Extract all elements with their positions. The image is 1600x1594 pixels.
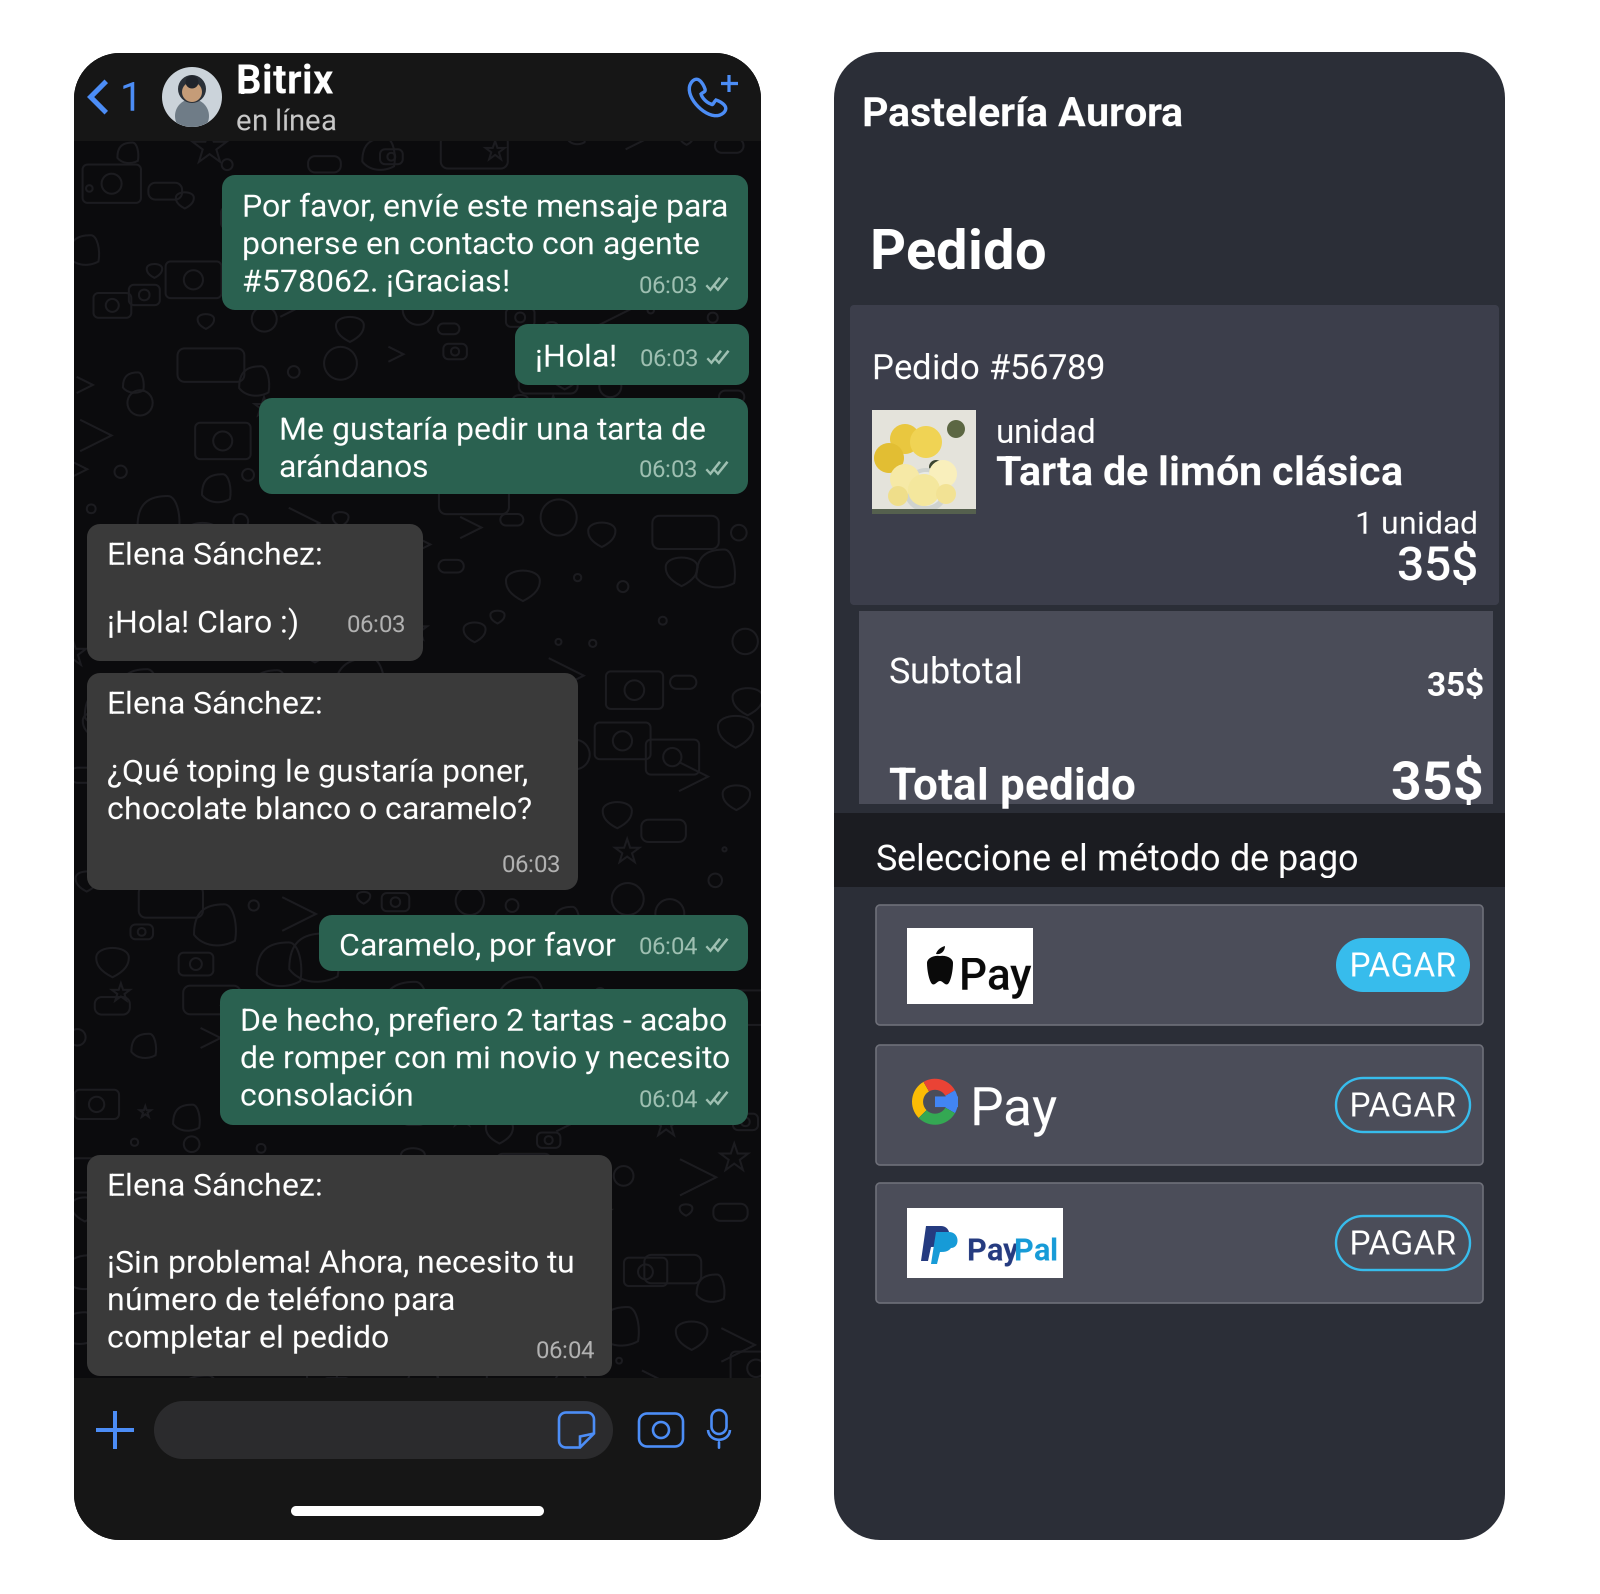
button[interactable]: Attach xyxy=(74,1411,154,1449)
staticText: 35$ xyxy=(1397,536,1478,592)
staticText: Pay xyxy=(959,949,1032,1001)
staticText: PAGAR xyxy=(1349,1223,1456,1263)
staticText: PAGAR xyxy=(1349,945,1456,985)
staticText: PAGAR xyxy=(1349,1085,1456,1125)
staticText: 06:03 xyxy=(502,850,560,878)
staticText: Subtotal xyxy=(889,650,1023,692)
button[interactable]: Message xyxy=(154,1401,613,1459)
staticText: ¡Hola! Claro :) xyxy=(107,603,299,640)
staticText: 06:04 xyxy=(536,1336,594,1364)
button[interactable]: PAGAR xyxy=(1336,1216,1470,1270)
button[interactable]: Pay xyxy=(876,905,1483,1025)
staticText: 35$ xyxy=(1391,750,1484,812)
button[interactable]: Back xyxy=(74,74,148,120)
staticText: Pay xyxy=(967,1232,1018,1268)
staticText: Por favor, envíe este mensaje para poner… xyxy=(242,187,728,299)
staticText: 06:03 xyxy=(347,610,405,638)
staticText: Seleccione el método de pago xyxy=(876,837,1359,879)
staticText: Tarta de limón clásica xyxy=(996,447,1403,495)
staticText: 06:04 xyxy=(639,932,697,960)
staticText: 35$ xyxy=(1427,665,1484,704)
staticText: Elena Sánchez: xyxy=(107,684,323,721)
staticText: 1 unidad xyxy=(1355,504,1478,541)
button[interactable]: New call xyxy=(685,73,761,121)
button[interactable]: Voice message xyxy=(707,1410,761,1450)
button[interactable]: Pay xyxy=(876,1183,1483,1303)
button[interactable]: Camera xyxy=(613,1413,707,1446)
staticText: Pedido #56789 xyxy=(872,347,1105,388)
staticText: 06:03 xyxy=(639,271,697,299)
button[interactable]: Pay xyxy=(876,1045,1483,1165)
staticText: 06:04 xyxy=(639,1085,697,1113)
staticText: Pal xyxy=(1014,1232,1058,1268)
staticText: Pastelería Aurora xyxy=(862,88,1183,136)
button[interactable]: PAGAR xyxy=(1336,938,1470,992)
staticText: Pay xyxy=(970,1076,1057,1138)
staticText: 1 xyxy=(120,74,142,120)
staticText: Bitrix xyxy=(236,56,333,103)
staticText: Total pedido xyxy=(889,759,1136,811)
staticText: 06:03 xyxy=(639,455,697,483)
staticText: Pedido xyxy=(870,217,1047,283)
staticText: unidad xyxy=(996,412,1096,451)
staticText: ¿Qué toping le gustaría poner, chocolate… xyxy=(107,752,532,827)
staticText: De hecho, prefiero 2 tartas - acabo de r… xyxy=(240,1001,730,1113)
staticText: 06:03 xyxy=(640,344,698,372)
button[interactable]: PAGAR xyxy=(1336,1078,1470,1132)
staticText: Elena Sánchez: xyxy=(107,535,323,572)
staticText: Me gustaría pedir una tarta de arándanos xyxy=(279,410,706,485)
staticText: Elena Sánchez: xyxy=(107,1166,323,1203)
staticText: Caramelo, por favor xyxy=(339,926,616,963)
staticText: ¡Sin problema! Ahora, necesito tu número… xyxy=(107,1243,575,1355)
staticText: ¡Hola! xyxy=(535,337,617,374)
staticText: en línea xyxy=(236,103,337,138)
